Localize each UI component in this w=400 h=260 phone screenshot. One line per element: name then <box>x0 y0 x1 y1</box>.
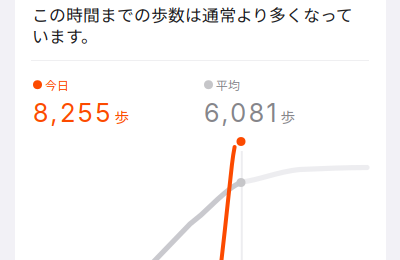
staticText: います。 <box>32 23 98 48</box>
staticText: 今日 <box>45 76 69 93</box>
staticText: 歩 <box>280 106 295 127</box>
staticText: 6,081 <box>204 97 276 128</box>
staticText: 平均 <box>216 76 240 93</box>
staticText: 8,255 <box>33 97 110 128</box>
staticText: この時間までの歩数は通常より多くなって <box>32 2 353 26</box>
staticText: 歩 <box>114 106 129 127</box>
